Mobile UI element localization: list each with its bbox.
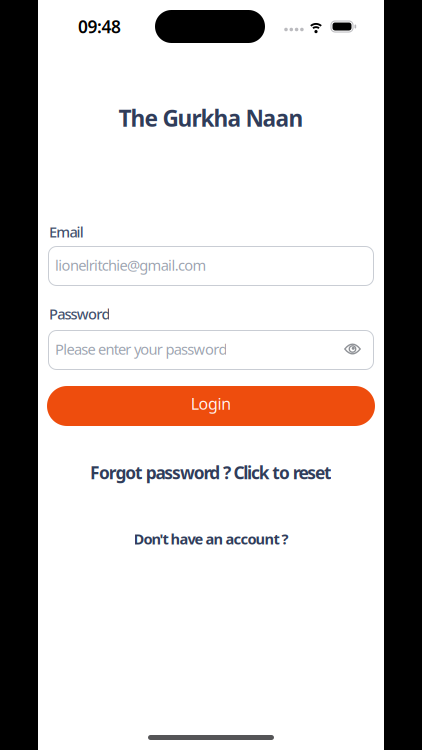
button[interactable]: Don't have an account ?: [133, 529, 288, 548]
button[interactable]: Show password: [344, 343, 361, 355]
staticText: lionelritchie@gmail.com: [55, 255, 207, 275]
staticText: Login: [191, 393, 231, 414]
staticText: Please enter your password: [55, 339, 227, 359]
staticText: Email: [49, 222, 84, 241]
staticText: The Gurkha Naan: [118, 103, 303, 133]
button[interactable]: Forgot password ? Click to reset: [90, 461, 332, 484]
staticText: 09:48: [78, 15, 121, 38]
staticText: Password: [49, 304, 110, 323]
staticText: Don't have an account ?: [133, 529, 288, 548]
staticText: Forgot password ? Click to reset: [90, 461, 332, 484]
button[interactable]: Login: [47, 386, 375, 426]
